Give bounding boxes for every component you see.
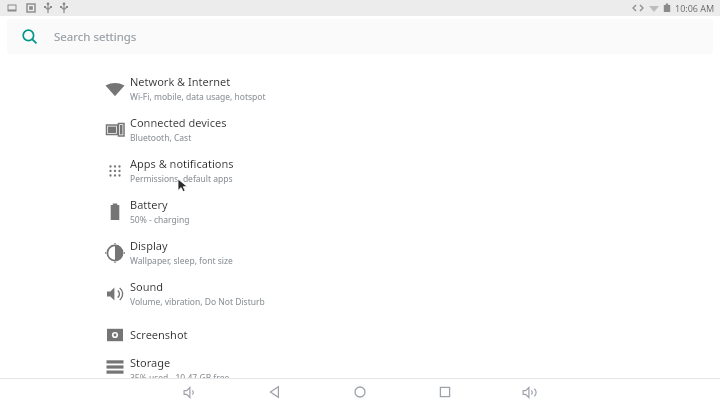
button[interactable]: Battery (0, 191, 720, 232)
button[interactable]: Recents (402, 379, 487, 405)
staticText: Search settings (54, 29, 137, 45)
staticText: Battery (130, 197, 168, 212)
staticText: Wi-Fi, mobile, data usage, hotspot (130, 91, 266, 103)
button[interactable]: Apps & notifications (0, 150, 720, 191)
staticText: Screenshot (130, 327, 188, 342)
staticText: Wallpaper, sleep, font size (130, 255, 233, 267)
staticText: Permissions, default apps (130, 173, 233, 185)
staticText: 50% - charging (130, 214, 190, 226)
staticText: 35% used - 10.47 GB free (130, 372, 230, 378)
button[interactable]: Home (317, 379, 402, 405)
staticText: Network & Internet (130, 74, 231, 89)
staticText: Bluetooth, Cast (130, 132, 192, 144)
button[interactable]: Volume down (148, 379, 232, 405)
button[interactable]: Network & Internet (0, 68, 720, 109)
staticText: Volume, vibration, Do Not Disturb (130, 296, 265, 308)
staticText: Connected devices (130, 115, 227, 130)
button[interactable]: Connected devices (0, 109, 720, 150)
button[interactable]: Sound (0, 273, 720, 314)
staticText: Sound (130, 279, 164, 294)
staticText: Storage (130, 355, 171, 370)
button[interactable]: Volume up (487, 379, 572, 405)
button[interactable]: Search settings (7, 19, 713, 54)
staticText: Display (130, 238, 168, 253)
button[interactable]: Screenshot (0, 314, 720, 355)
button[interactable]: Back (232, 379, 317, 405)
button[interactable]: Storage (0, 355, 720, 378)
staticText: Apps & notifications (130, 156, 234, 171)
staticText: 10:06 AM (675, 2, 715, 14)
button[interactable]: Display (0, 232, 720, 273)
